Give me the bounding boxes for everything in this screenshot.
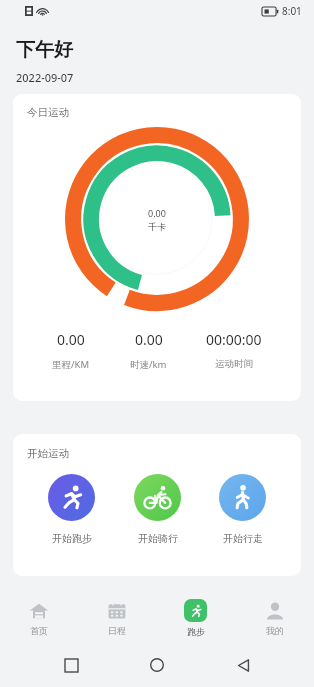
staticText: 开始运动 (27, 447, 69, 460)
staticText: 今日运动 (27, 106, 69, 119)
button[interactable]: Back (228, 650, 258, 680)
staticText: 首页 (30, 625, 48, 636)
staticText: 日程 (108, 625, 126, 636)
staticText: 时速/km (130, 358, 167, 371)
staticText: 0.00 (148, 207, 166, 219)
staticText: 跑步 (187, 626, 205, 637)
button[interactable]: 开始骑行 (130, 474, 185, 545)
button[interactable]: 开始跑步 (44, 474, 99, 545)
staticText: 运动时间 (215, 358, 253, 370)
button[interactable]: 开始行走 (215, 474, 270, 545)
button[interactable]: 跑步 (156, 596, 235, 640)
staticText: 0.00 (135, 330, 163, 349)
staticText: 下午好 (16, 38, 73, 62)
button[interactable]: 日程 (78, 598, 156, 639)
button[interactable]: 首页 (0, 598, 78, 639)
button[interactable]: 我的 (235, 598, 314, 639)
staticText: 我的 (266, 625, 284, 636)
staticText: 里程/KM (52, 358, 90, 371)
staticText: 0.00 (57, 330, 85, 349)
staticText: 开始行走 (223, 532, 263, 545)
staticText: 开始骑行 (138, 532, 178, 545)
staticText: 开始跑步 (52, 532, 92, 545)
staticText: 00:00:00 (206, 330, 262, 349)
button[interactable]: Recent apps (56, 650, 86, 680)
button[interactable]: Home (142, 650, 172, 680)
staticText: 8:01 (282, 4, 302, 18)
staticText: 千卡 (148, 221, 166, 232)
staticText: 2022-09-07 (16, 70, 74, 85)
